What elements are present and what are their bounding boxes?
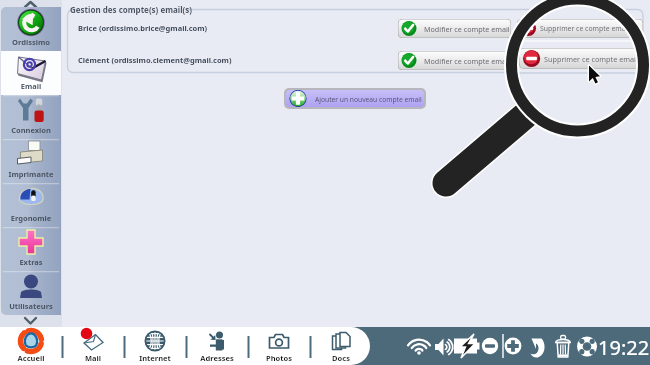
staticText: Supprimer ce compte email (543, 56, 637, 66)
staticText: Connexion (1, 125, 61, 135)
staticText: Modifier ce compte email (424, 56, 510, 66)
button[interactable]: Modifier ce compte email (398, 19, 511, 38)
staticText: Accueil (0, 353, 62, 363)
staticText: Photos (248, 353, 310, 363)
button[interactable]: Supprimer ce compte email (517, 19, 643, 38)
staticText: Supprimer ce compte email (544, 54, 638, 64)
staticText: Supprimer ce compte email (543, 24, 637, 34)
staticText: Ajouter un nouveau compte email (315, 95, 422, 104)
staticText: Brice (ordissimo.brice@gmail.com) (78, 23, 208, 33)
button[interactable]: Connexion (1, 95, 61, 139)
button[interactable]: Imprimante (1, 139, 61, 183)
staticText: Extras (1, 257, 61, 267)
staticText: Clément (ordissimo.clement@gmail.com) (78, 55, 232, 65)
staticText: 19:22 (598, 334, 650, 361)
button[interactable]: Ergonomie (1, 183, 61, 227)
button[interactable]: Adresses (186, 327, 248, 365)
button[interactable]: Extras (1, 227, 61, 271)
staticText: Ordissimo (1, 37, 61, 47)
button[interactable]: Supprimer ce compte email (517, 51, 643, 70)
staticText: Gestion des compte(s) email(s) (70, 4, 192, 15)
staticText: Mail (62, 353, 124, 363)
button[interactable]: Supprimer ce compte email (519, 48, 643, 69)
staticText: Adresses (186, 353, 248, 363)
staticText: Ergonomie (1, 213, 61, 223)
staticText: Email (1, 81, 61, 91)
button[interactable]: Utilisateurs (1, 271, 61, 315)
button[interactable]: Supprimer ce compte email (517, 19, 643, 38)
staticText: Internet (124, 353, 186, 363)
button[interactable]: Accueil (0, 327, 62, 365)
button[interactable]: Docs (310, 327, 372, 365)
button[interactable]: Email (1, 51, 61, 95)
button[interactable]: Modifier ce compte email (398, 51, 511, 70)
button[interactable]: Ajouter un nouveau compte email (286, 90, 424, 107)
staticText: Utilisateurs (1, 301, 61, 311)
staticText: Imprimante (1, 169, 61, 179)
staticText: Docs (310, 353, 372, 363)
button[interactable]: Ordissimo (1, 7, 61, 51)
button[interactable]: Photos (248, 327, 310, 365)
staticText: Supprimer ce compte email (540, 24, 630, 33)
staticText: Modifier ce compte email (424, 24, 510, 34)
button[interactable]: Internet (124, 327, 186, 365)
button[interactable]: Mail (62, 327, 124, 365)
